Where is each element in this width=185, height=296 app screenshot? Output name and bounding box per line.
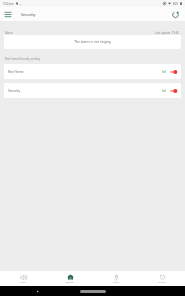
button[interactable]: Sound (0, 271, 47, 286)
staticText: Forecast (158, 281, 166, 284)
button[interactable]: Not Home switch (170, 69, 177, 75)
button[interactable]: The alarm is not ringing (4, 35, 181, 49)
staticText: Security (21, 12, 36, 17)
staticText: Sound (20, 281, 27, 284)
button[interactable]: Home (80, 290, 106, 293)
button[interactable]: Security switch (170, 88, 177, 94)
button[interactable]: Security (47, 271, 93, 286)
staticText: Set (162, 89, 167, 93)
staticText: 7:42 pm (3, 2, 14, 6)
button[interactable]: Not Home (4, 64, 181, 79)
button[interactable]: Back (34, 288, 41, 295)
staticText: 1x (19, 2, 22, 5)
button[interactable]: Refresh (167, 7, 183, 21)
staticText: Last update 19:45 (155, 31, 180, 35)
staticText: Security (66, 281, 74, 284)
staticText: Security (8, 89, 21, 93)
staticText: The alarm is not ringing (74, 40, 111, 44)
button[interactable]: Socket (93, 271, 139, 286)
staticText: 86% (173, 2, 179, 6)
staticText: Socket (113, 281, 120, 284)
staticText: Alarm (5, 31, 13, 35)
button[interactable]: Forecast (139, 271, 185, 286)
staticText: Not Home/Security setting (5, 57, 40, 61)
staticText: Not Home (8, 70, 24, 74)
button[interactable]: Security (4, 83, 181, 98)
button[interactable]: Open navigation menu (0, 7, 16, 21)
staticText: Set (162, 70, 167, 74)
